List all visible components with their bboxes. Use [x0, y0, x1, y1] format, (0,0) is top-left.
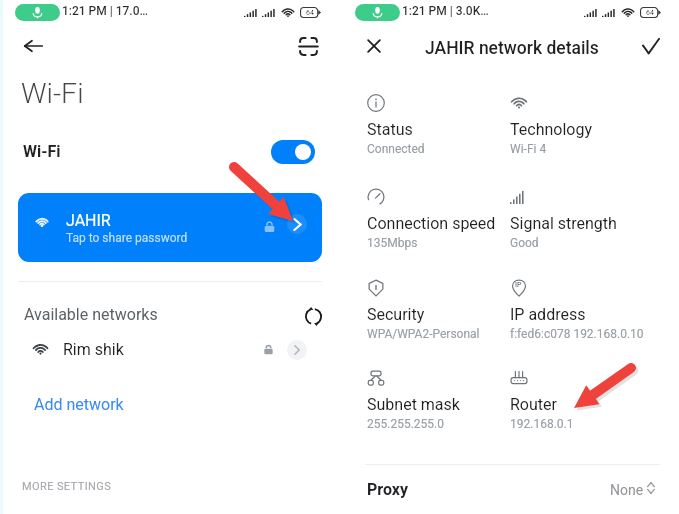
staticText: Add network	[34, 395, 124, 414]
staticText: Wi-Fi	[21, 77, 84, 110]
button[interactable]: Signal strength	[510, 184, 660, 258]
staticText: MORE SETTINGS	[22, 480, 112, 493]
staticText: Tap to share password	[66, 231, 188, 245]
button[interactable]: Close	[357, 29, 391, 63]
staticText: 64	[646, 9, 654, 17]
staticText: Wi-Fi	[23, 142, 61, 161]
staticText: Connection speed	[367, 214, 496, 233]
button[interactable]: Security	[367, 275, 517, 349]
button[interactable]: JAHIR	[18, 193, 322, 262]
button[interactable]: IP	[510, 275, 660, 349]
button[interactable]: Wi-Fi	[0, 133, 340, 171]
staticText: 135Mbps	[367, 236, 418, 250]
staticText: None	[610, 482, 644, 498]
staticText: Security	[367, 305, 425, 324]
button[interactable]: Status	[367, 90, 517, 164]
staticText: Proxy	[367, 480, 408, 499]
staticText: Connected	[367, 142, 425, 156]
button[interactable]: Connection speed	[367, 184, 517, 258]
staticText: Router	[510, 395, 557, 414]
button[interactable]: Scan QR code	[291, 29, 325, 63]
staticText: Subnet mask	[367, 395, 460, 414]
staticText: 1:21 PM | 3.0K…	[402, 4, 489, 18]
staticText: IP	[515, 281, 522, 289]
staticText: 1:21 PM | 17.0…	[62, 4, 148, 18]
button[interactable]: Proxy	[340, 470, 679, 514]
button[interactable]: Rim shik	[0, 333, 340, 367]
staticText: f:fed6:c078 192.168.0.10	[510, 327, 644, 341]
button[interactable]: Microphone in use	[355, 4, 400, 21]
staticText: Rim shik	[63, 340, 124, 359]
staticText: JAHIR network details	[425, 38, 599, 59]
staticText: Available networks	[24, 305, 158, 324]
button[interactable]: Refresh networks	[300, 303, 326, 329]
staticText: JAHIR	[66, 211, 111, 230]
staticText: IP address	[510, 305, 586, 324]
staticText: Wi-Fi 4	[510, 142, 547, 156]
button[interactable]: Save	[634, 29, 668, 63]
button[interactable]: Back	[16, 29, 50, 63]
button[interactable]: Subnet mask	[367, 365, 517, 439]
staticText: 192.168.0.1	[510, 417, 574, 431]
staticText: Technology	[510, 120, 592, 139]
button[interactable]: Add network	[28, 389, 130, 420]
staticText: WPA/WPA2-Personal	[367, 327, 480, 341]
staticText: 255.255.255.0	[367, 417, 444, 431]
button[interactable]: Technology	[510, 90, 660, 164]
button[interactable]: Router	[510, 365, 660, 439]
staticText: Signal strength	[510, 214, 617, 233]
staticText: Good	[510, 236, 539, 250]
button[interactable]: Microphone in use	[15, 4, 60, 21]
staticText: Status	[367, 120, 413, 139]
staticText: 64	[306, 9, 314, 17]
